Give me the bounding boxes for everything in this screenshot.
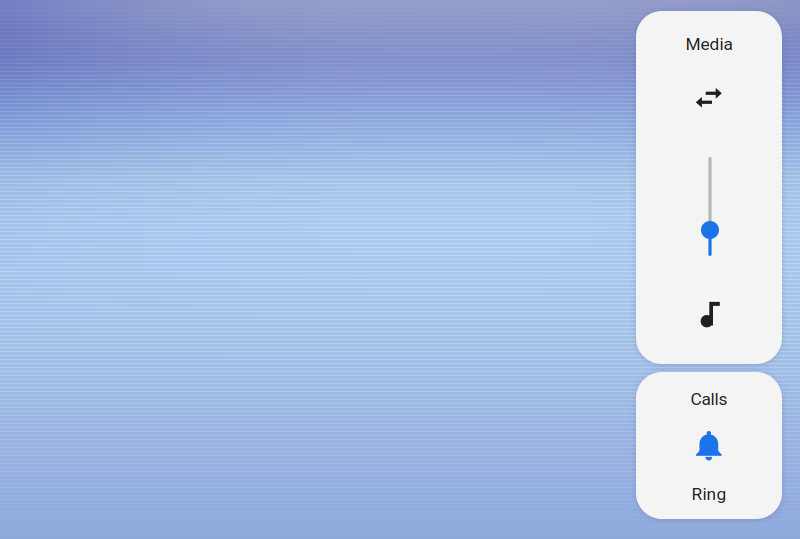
button[interactable]: Media volume [678,293,742,335]
button[interactable]: Ringer mode: Ring [677,424,741,468]
staticText: Ring [691,484,726,504]
staticText: Calls [690,389,727,409]
staticText: Media [685,34,732,54]
button[interactable]: Switch media output [677,75,741,121]
